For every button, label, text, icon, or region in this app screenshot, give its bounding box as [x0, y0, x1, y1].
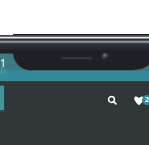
button[interactable]: Search [103, 91, 120, 108]
staticText: 1 [0, 55, 7, 70]
staticText: 2 [145, 95, 149, 105]
button[interactable]: Favorites [132, 91, 149, 108]
